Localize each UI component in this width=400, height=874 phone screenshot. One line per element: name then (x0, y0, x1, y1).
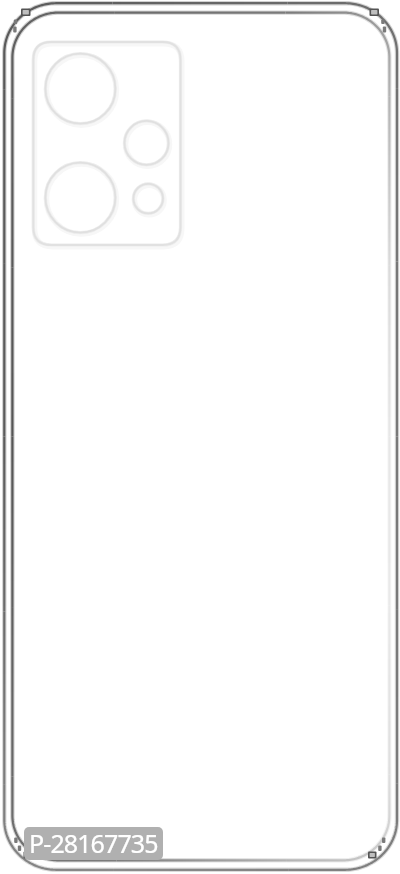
button[interactable]: P-28167735 (24, 827, 163, 860)
button[interactable]: Transparent back cover product photo (0, 0, 400, 874)
staticText: P-28167735 (29, 827, 158, 859)
